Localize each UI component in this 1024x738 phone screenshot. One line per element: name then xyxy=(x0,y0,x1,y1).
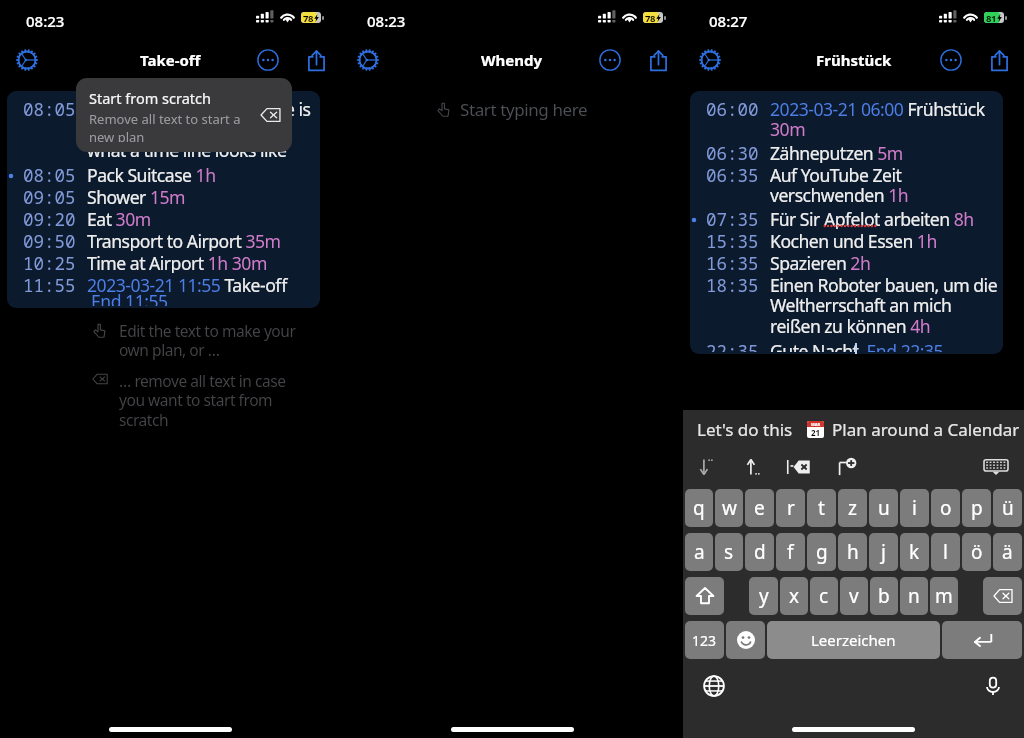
staticText: 08:05 xyxy=(23,163,76,185)
staticText: n xyxy=(908,583,920,609)
staticText: l xyxy=(943,539,948,565)
button[interactable]: Voice input xyxy=(978,671,1008,701)
staticText: 06:00 xyxy=(706,97,759,121)
button[interactable]: Share xyxy=(984,45,1014,75)
button[interactable]: m xyxy=(930,577,958,615)
button[interactable]: l xyxy=(931,533,960,571)
staticText: Leerzeichen xyxy=(811,630,896,650)
button[interactable]: More options xyxy=(936,45,966,75)
button[interactable]: n xyxy=(900,577,928,615)
button[interactable]: Settings xyxy=(695,45,725,75)
button[interactable]: ö xyxy=(962,533,991,571)
staticText: Remove all text to start a new plan xyxy=(89,110,256,142)
staticText: a xyxy=(694,539,705,565)
button[interactable]: Share xyxy=(301,45,331,75)
staticText: z xyxy=(848,495,857,521)
staticText: Pack Suitcase 1h xyxy=(87,163,216,185)
button[interactable]: c xyxy=(810,577,838,615)
staticText: h xyxy=(847,539,859,565)
button[interactable]: d xyxy=(745,533,774,571)
staticText: 2023-03-21 06:00 Frühstück 30m xyxy=(770,97,1003,141)
button[interactable]: g xyxy=(807,533,836,571)
staticText: k xyxy=(909,539,920,565)
staticText: Transport to Airport 35m xyxy=(87,229,281,251)
staticText: g xyxy=(816,539,828,565)
staticText: Time at Airport 1h 30m xyxy=(87,251,267,273)
button[interactable] xyxy=(685,577,724,615)
staticText: Einen Roboter bauen, um die Weltherrscha… xyxy=(770,273,1003,339)
button[interactable]: More options xyxy=(253,45,283,75)
staticText: 78 xyxy=(645,12,656,23)
staticText: 15:35 xyxy=(706,229,759,251)
staticText: y xyxy=(759,583,769,609)
staticText: t xyxy=(818,495,825,521)
button[interactable]: ü xyxy=(993,489,1022,527)
button[interactable]: r xyxy=(776,489,805,527)
staticText: 81 xyxy=(986,12,997,23)
staticText: i xyxy=(912,495,917,521)
button[interactable]: More options xyxy=(595,45,625,75)
staticText: 08:23 xyxy=(367,11,406,31)
button[interactable]: f xyxy=(776,533,805,571)
button[interactable]: e xyxy=(745,489,774,527)
button[interactable] xyxy=(983,577,1022,615)
staticText: ö xyxy=(971,539,983,565)
button[interactable]: s xyxy=(715,533,743,571)
button[interactable]: k xyxy=(900,533,929,571)
staticText: 07:35 xyxy=(706,207,759,229)
staticText: w xyxy=(722,495,737,521)
staticText: 22:35 xyxy=(706,339,759,352)
button[interactable]: o xyxy=(931,489,960,527)
staticText: Gute Nacht End 22:35 xyxy=(770,339,944,352)
staticText: 08:05 xyxy=(23,97,76,121)
staticText: 06:30 xyxy=(706,141,759,163)
staticText: … remove all text in case you want to st… xyxy=(119,370,313,431)
button[interactable] xyxy=(942,621,1022,659)
button[interactable]: x xyxy=(780,577,808,615)
staticText: 123 xyxy=(692,631,717,650)
button[interactable]: q xyxy=(685,489,713,527)
button[interactable]: Settings xyxy=(12,45,42,75)
staticText: 10:25 xyxy=(23,251,76,273)
staticText: 09:20 xyxy=(23,207,76,229)
button[interactable]: u xyxy=(869,489,898,527)
staticText: 16:35 xyxy=(706,251,759,273)
staticText: Welcome to Whendy! Here is a short demon… xyxy=(87,97,320,163)
staticText: Start from scratch xyxy=(89,88,212,108)
button[interactable]: Change language xyxy=(699,671,729,701)
button[interactable]: z xyxy=(838,489,867,527)
button[interactable]: j xyxy=(869,533,898,571)
staticText: 2023-03-21 11:55 Take-off End 11:55 xyxy=(87,273,320,306)
staticText: p xyxy=(971,495,983,521)
button[interactable]: 123 xyxy=(685,621,724,659)
button[interactable]: t xyxy=(807,489,836,527)
button[interactable]: ä xyxy=(993,533,1022,571)
button[interactable]: Leerzeichen xyxy=(767,621,940,659)
staticText: Edit the text to make your own plan, or … xyxy=(119,320,313,361)
button[interactable]: b xyxy=(870,577,898,615)
button[interactable]: p xyxy=(962,489,991,527)
staticText: Plan around a Calendar I xyxy=(832,418,1024,441)
staticText: 21 xyxy=(811,427,821,438)
button[interactable]: Settings xyxy=(353,45,383,75)
staticText: r xyxy=(787,495,795,521)
staticText: 11:55 xyxy=(23,273,76,297)
button[interactable]: Share xyxy=(643,45,673,75)
staticText: ü xyxy=(1002,495,1014,521)
button[interactable]: h xyxy=(838,533,867,571)
button[interactable]: i xyxy=(900,489,929,527)
staticText: j xyxy=(881,539,886,565)
staticText: 78 xyxy=(303,12,314,23)
staticText: c xyxy=(819,583,829,609)
staticText: Start typing here xyxy=(460,98,588,121)
button[interactable] xyxy=(726,621,765,659)
staticText: Kochen und Essen 1h xyxy=(770,229,937,251)
staticText: b xyxy=(878,583,890,609)
button[interactable]: v xyxy=(840,577,868,615)
button[interactable]: y xyxy=(749,577,778,615)
staticText: Whendy xyxy=(481,50,543,70)
staticText: Spazieren 2h xyxy=(770,251,871,273)
staticText: Take-off xyxy=(140,50,201,70)
button[interactable]: a xyxy=(685,533,713,571)
button[interactable]: w xyxy=(715,489,743,527)
